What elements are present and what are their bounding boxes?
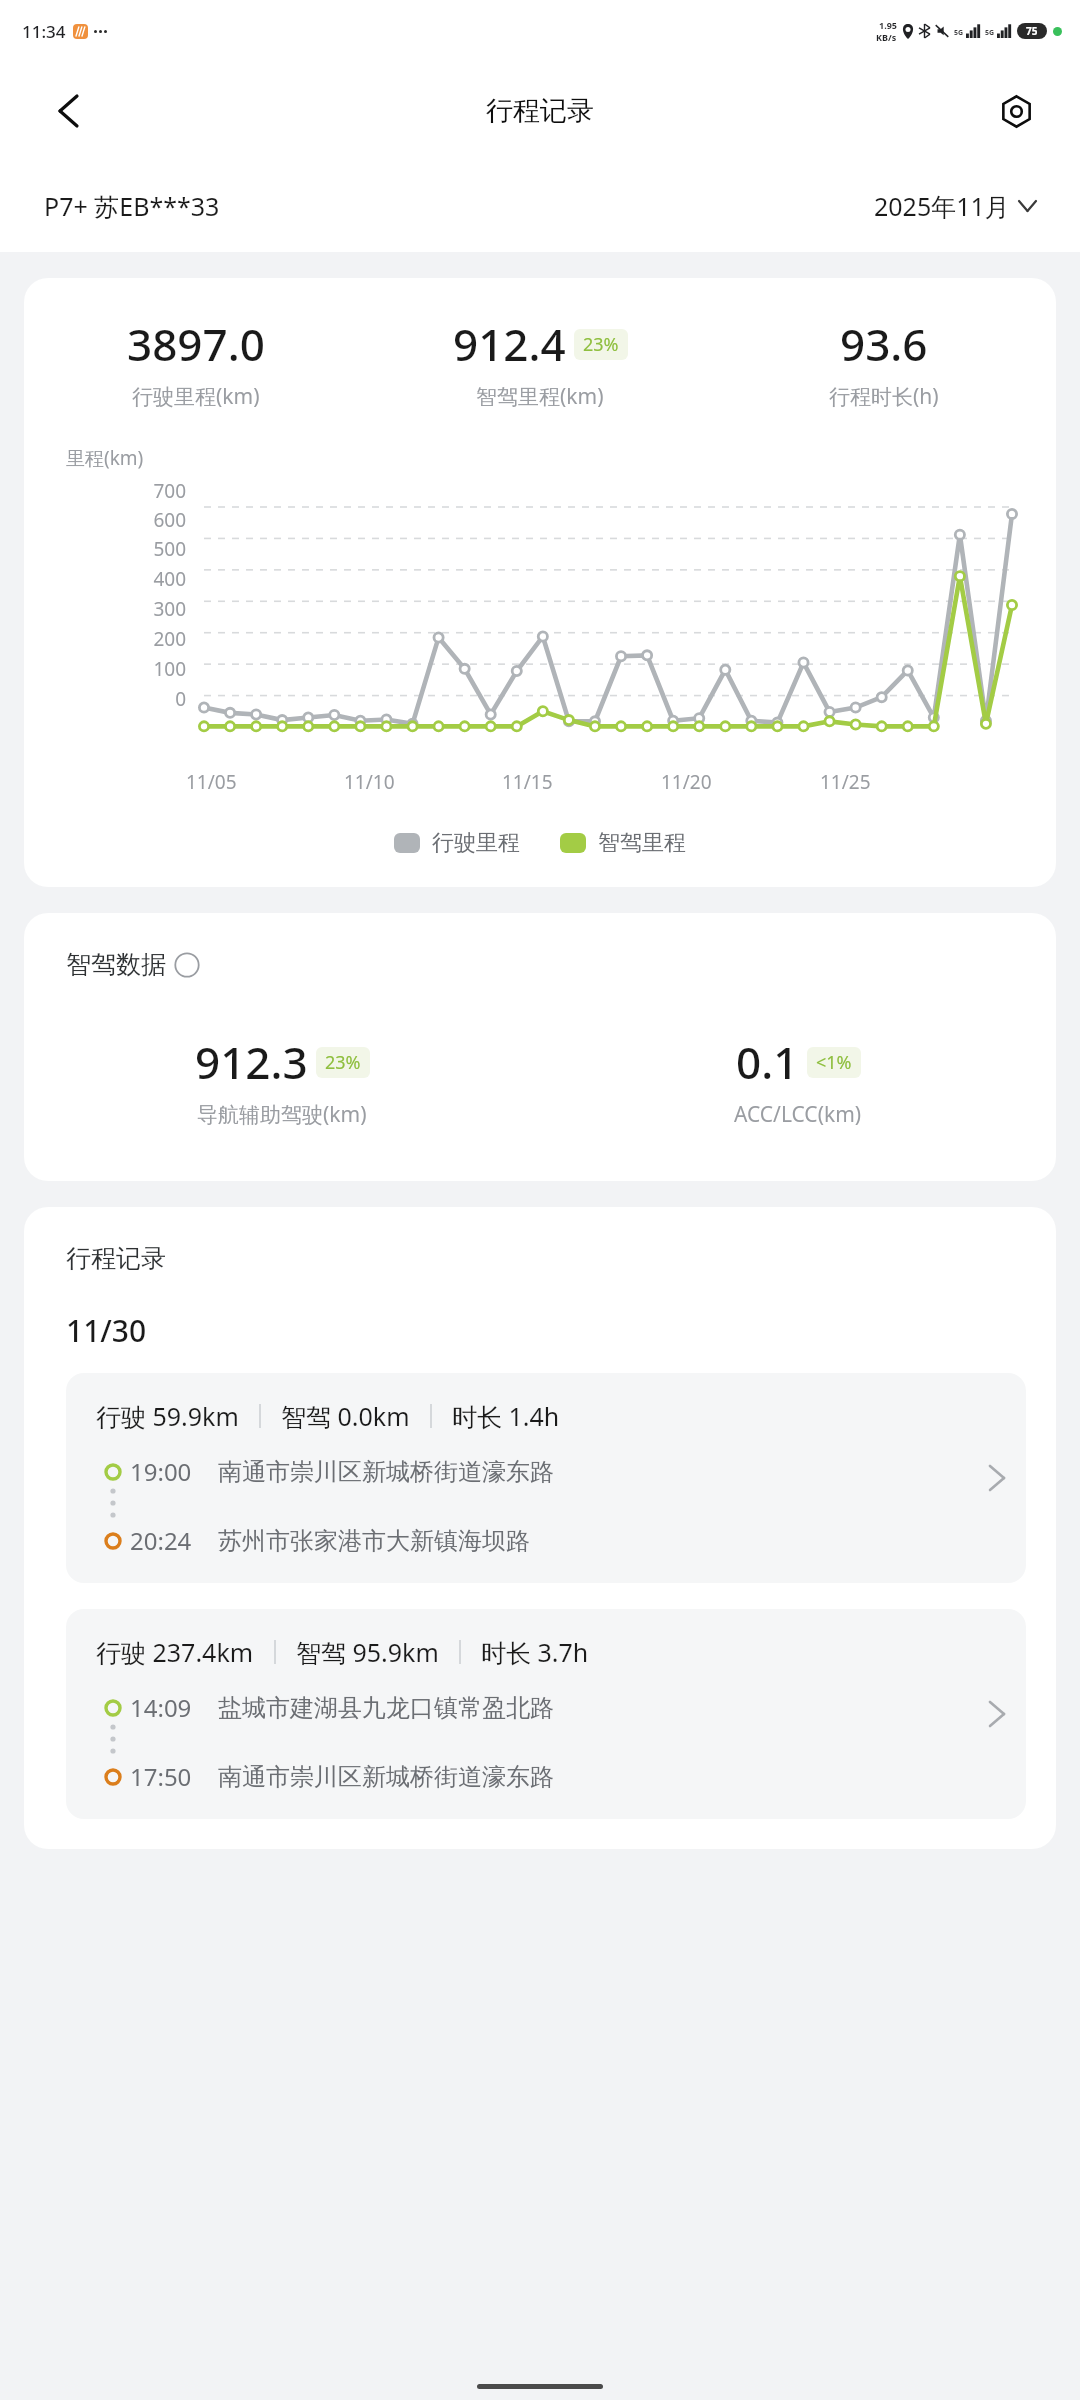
staticText: 智驾数据 — [66, 949, 166, 980]
staticText: 智驾 95.9km — [296, 1635, 439, 1669]
staticText: 行驶 59.9km — [96, 1399, 239, 1433]
staticText: 93.6 — [840, 314, 928, 374]
staticText: 11/05 — [186, 769, 237, 795]
staticText: 导航辅助驾驶(km) — [197, 1100, 367, 1129]
staticText: 智驾里程 — [598, 829, 686, 857]
staticText: 盐城市建湖县九龙口镇常盈北路 — [218, 1693, 554, 1723]
staticText: 0.1 — [736, 1032, 799, 1092]
staticText: 100 — [153, 656, 186, 682]
staticText: 11:34 — [22, 20, 66, 43]
staticText: 行驶 237.4km — [96, 1635, 254, 1669]
staticText: 200 — [153, 626, 186, 652]
staticText: 11/15 — [502, 769, 553, 795]
staticText: 南通市崇川区新城桥街道濠东路 — [218, 1457, 554, 1487]
staticText: 行驶里程 — [432, 829, 520, 857]
staticText: 11/25 — [820, 769, 871, 795]
staticText: KB/s — [876, 31, 897, 43]
staticText: 600 — [153, 507, 186, 533]
staticText: 苏州市张家港市大新镇海坝路 — [218, 1526, 530, 1556]
staticText: 时长 1.4h — [452, 1399, 560, 1433]
staticText: 912.4 — [453, 314, 566, 374]
staticText: 里程(km) — [66, 445, 144, 471]
staticText: P7+ 苏EB***33 — [44, 189, 220, 223]
staticText: 912.3 — [195, 1032, 308, 1092]
staticText: 20:24 — [130, 1524, 192, 1557]
button[interactable]: 行驶 59.9km — [66, 1373, 1026, 1583]
staticText: 23% — [325, 1050, 361, 1075]
staticText: 0 — [175, 686, 186, 712]
staticText: 19:00 — [130, 1455, 192, 1488]
staticText: 行程时长(h) — [829, 382, 939, 411]
staticText: 行程记录 — [486, 94, 594, 128]
staticText: 行程记录 — [66, 1243, 166, 1274]
button[interactable]: Settings — [988, 83, 1044, 139]
button[interactable]: 智驾数据 — [66, 949, 200, 980]
staticText: 智驾里程(km) — [476, 382, 604, 411]
staticText: 11/30 — [66, 1310, 147, 1351]
staticText: 3897.0 — [127, 314, 265, 374]
staticText: 17:50 — [130, 1760, 192, 1793]
staticText: 1.95 — [879, 19, 897, 31]
staticText: 2025年11月 — [874, 189, 1010, 223]
staticText: 14:09 — [130, 1691, 192, 1724]
button[interactable]: 行驶 237.4km — [66, 1609, 1026, 1819]
staticText: 时长 3.7h — [481, 1635, 589, 1669]
button[interactable]: 2025年11月 — [874, 189, 1036, 223]
staticText: 500 — [153, 536, 186, 562]
staticText: 75 — [1026, 24, 1038, 38]
button[interactable]: 行驶里程 — [394, 829, 520, 857]
staticText: 400 — [153, 566, 186, 592]
staticText: 南通市崇川区新城桥街道濠东路 — [218, 1762, 554, 1792]
staticText: 300 — [153, 596, 186, 622]
staticText: 5G — [954, 28, 964, 38]
staticText: 智驾 0.0km — [281, 1399, 410, 1433]
staticText: 11/20 — [661, 769, 712, 795]
staticText: 5G — [985, 28, 995, 38]
staticText: ACC/LCC(km) — [734, 1100, 862, 1129]
button[interactable]: 智驾里程 — [560, 829, 686, 857]
staticText: 23% — [583, 332, 619, 357]
staticText: <1% — [816, 1050, 852, 1075]
staticText: 700 — [153, 478, 186, 504]
staticText: 11/10 — [344, 769, 395, 795]
button[interactable]: Back — [40, 83, 96, 139]
staticText: 行驶里程(km) — [132, 382, 260, 411]
